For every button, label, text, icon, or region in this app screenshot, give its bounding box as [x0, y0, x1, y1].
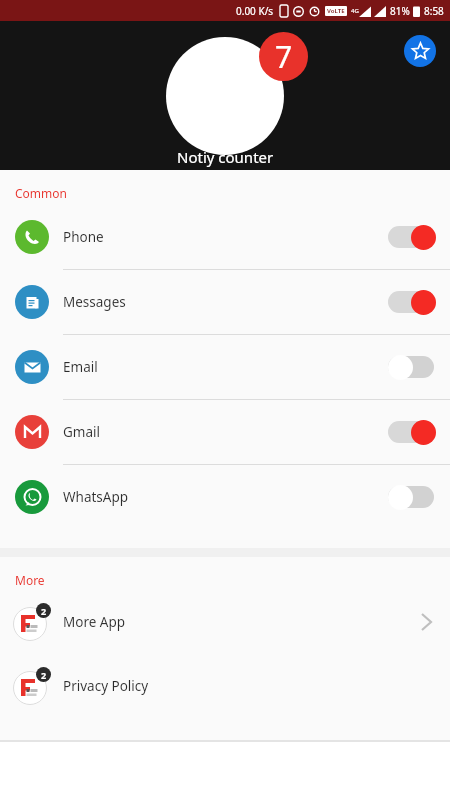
staticText: 7 [275, 36, 293, 77]
button[interactable]: Rate app [404, 35, 436, 67]
staticText: WhatsApp [63, 488, 129, 506]
staticText: Common [15, 185, 67, 201]
button[interactable]: 2 [0, 654, 450, 718]
staticText: Notiy counter [177, 147, 274, 167]
staticText: Phone [63, 228, 104, 246]
staticText: Gmail [63, 423, 100, 441]
staticText: 4G [351, 7, 359, 15]
button[interactable]: Phone [0, 205, 450, 269]
staticText: 2 [41, 605, 47, 617]
staticText: 8:58 [424, 4, 444, 18]
button[interactable]: Messages [0, 270, 450, 334]
staticText: Privacy Policy [63, 677, 149, 695]
staticText: More [15, 572, 45, 588]
button[interactable]: 2 [0, 590, 450, 654]
staticText: 0.00 K/s [236, 4, 274, 18]
button[interactable]: Email [0, 335, 450, 399]
staticText: 81% [390, 4, 410, 18]
button[interactable]: Gmail [0, 400, 450, 464]
staticText: VoLTE [327, 7, 345, 15]
staticText: Messages [63, 293, 126, 311]
staticText: Email [63, 358, 98, 376]
button[interactable]: WhatsApp [0, 465, 450, 529]
staticText: More App [63, 613, 126, 631]
staticText: 2 [41, 669, 47, 681]
button[interactable]: Notification counter [166, 37, 284, 155]
